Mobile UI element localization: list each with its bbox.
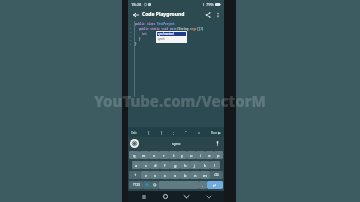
button[interactable]: Keyboard settings	[130, 139, 139, 148]
button[interactable]: Symbols	[129, 181, 143, 189]
button[interactable]: .	[199, 181, 207, 189]
staticText: m	[203, 173, 207, 178]
button[interactable]: k	[200, 161, 210, 169]
staticText: n	[194, 173, 197, 178]
button[interactable]: Hide keyboard	[203, 191, 214, 202]
staticText: z	[145, 173, 147, 178]
staticText: j	[194, 163, 196, 168]
button[interactable]: i	[196, 151, 205, 159]
staticText: r	[163, 153, 165, 158]
button[interactable]: b	[180, 171, 190, 179]
staticText: synch	[157, 37, 165, 41]
button[interactable]: More options	[213, 10, 222, 19]
button[interactable]: synch	[157, 37, 186, 41]
button[interactable]: Back	[130, 9, 141, 20]
staticText: Code Playground	[142, 11, 185, 18]
button[interactable]: }	[160, 129, 164, 136]
staticText: TestProject	[157, 22, 175, 26]
staticText: t	[173, 153, 175, 158]
staticText: e	[153, 153, 156, 158]
button[interactable]: o	[205, 151, 214, 159]
staticText: main	[170, 27, 177, 31]
button[interactable]: d	[150, 161, 160, 169]
button[interactable]: {	[147, 129, 151, 136]
staticText: 6	[130, 42, 132, 45]
button[interactable]: synchronized	[157, 32, 186, 36]
staticText: 4	[130, 34, 132, 37]
button[interactable]: n	[190, 171, 200, 179]
button[interactable]: Change language	[143, 181, 151, 189]
button[interactable]: Share	[202, 9, 213, 20]
staticText: }	[139, 37, 141, 41]
staticText: h	[184, 163, 187, 168]
staticText: 1	[130, 22, 132, 25]
staticText: ?123	[133, 183, 140, 187]
button[interactable]: q	[129, 151, 139, 159]
button[interactable]: Tab	[130, 129, 138, 136]
button[interactable]: y	[178, 151, 187, 159]
staticText: d	[154, 163, 157, 168]
button[interactable]: m	[200, 171, 210, 179]
staticText: p	[217, 153, 220, 158]
staticText: i	[200, 153, 202, 158]
staticText: }	[161, 130, 163, 135]
staticText: l	[214, 163, 216, 168]
button[interactable]: ;	[172, 129, 175, 136]
button[interactable]: e	[149, 151, 159, 159]
button[interactable]: "	[184, 129, 188, 136]
button[interactable]: Run ▶	[210, 129, 222, 136]
button[interactable]: x	[150, 171, 160, 179]
button[interactable]: =	[197, 129, 201, 136]
staticText: c	[164, 173, 166, 178]
button[interactable]: Voice input	[213, 139, 222, 148]
button[interactable]: z	[141, 171, 150, 179]
staticText: (String	[177, 27, 190, 31]
button[interactable]: Recents	[138, 191, 149, 202]
staticText: k	[204, 163, 207, 168]
staticText: Tab	[131, 130, 137, 135]
button[interactable]: j	[190, 161, 200, 169]
staticText: ↵	[213, 183, 217, 188]
button[interactable]: s	[141, 161, 150, 169]
button[interactable]: Enter	[207, 181, 223, 189]
staticText: public static void	[139, 27, 170, 31]
staticText: =	[198, 130, 200, 135]
button[interactable]: g	[170, 161, 180, 169]
button[interactable]: l	[210, 161, 220, 169]
staticText: ;	[173, 130, 174, 135]
staticText: args	[190, 27, 197, 31]
staticText: class	[147, 22, 157, 26]
staticText: 🌐	[145, 183, 149, 187]
staticText: w	[142, 153, 146, 158]
button[interactable]: h	[180, 161, 190, 169]
staticText: f	[164, 163, 166, 168]
button[interactable]: r	[159, 151, 169, 159]
staticText: g	[174, 163, 177, 168]
staticText: o	[208, 153, 211, 158]
staticText: s	[145, 163, 147, 168]
staticText: public	[135, 22, 147, 26]
staticText: ☺	[153, 183, 157, 187]
button[interactable]: Backspace	[210, 171, 223, 179]
staticText: 2	[130, 26, 132, 29]
button[interactable]: t	[169, 151, 178, 159]
button[interactable]: Emoji	[151, 181, 159, 189]
button[interactable]: Home	[160, 191, 171, 202]
button[interactable]: p	[214, 151, 223, 159]
staticText: a	[135, 163, 138, 168]
staticText: }	[135, 42, 137, 46]
staticText: []){	[197, 27, 204, 31]
staticText: x	[154, 173, 157, 178]
button[interactable]: w	[139, 151, 149, 159]
button[interactable]: Shift	[129, 171, 141, 179]
staticText: 5	[130, 38, 132, 41]
button[interactable]: v	[170, 171, 180, 179]
button[interactable]: Back	[181, 191, 192, 202]
button[interactable]: f	[160, 161, 170, 169]
button[interactable]: c	[160, 171, 170, 179]
staticText: synchronized	[157, 32, 174, 36]
staticText: ⇧	[134, 173, 137, 177]
button[interactable]: u	[187, 151, 196, 159]
button[interactable]: a	[132, 161, 141, 169]
